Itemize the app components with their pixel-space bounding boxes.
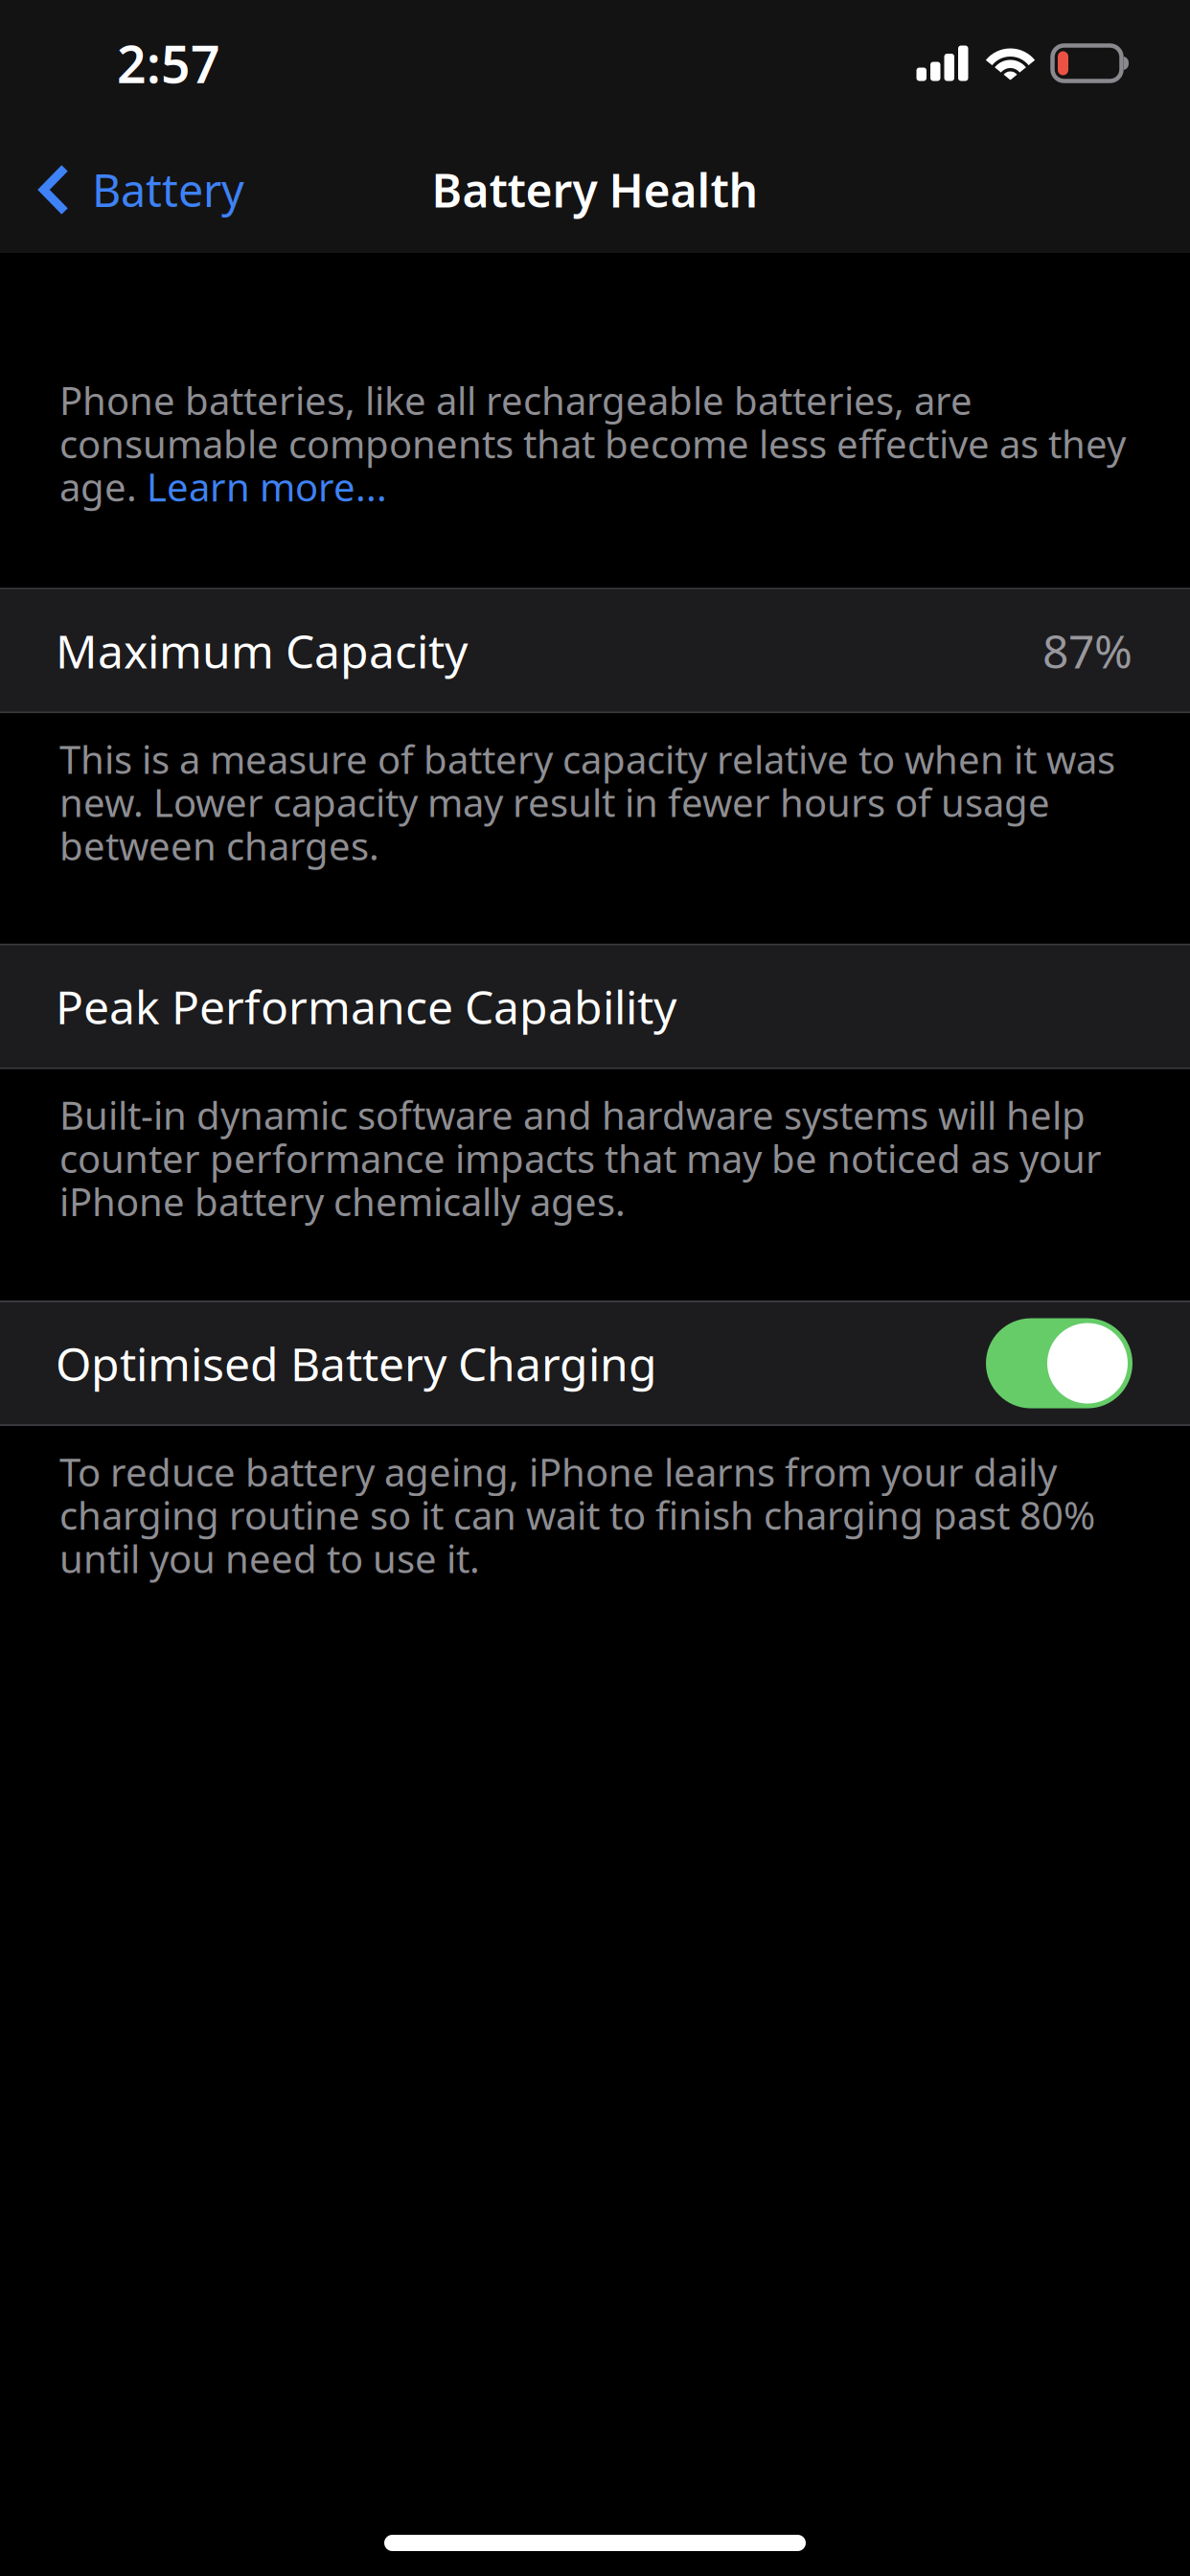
staticText: 2:57 [117,29,220,97]
staticText: This is a measure of battery capacity re… [59,734,1115,871]
staticText: 87% [1042,620,1133,681]
staticText: Peak Performance Capability [56,976,676,1037]
button[interactable]: Optimised Battery Charging [986,1318,1133,1408]
staticText: Battery Health [432,159,758,220]
staticText: Phone batteries, like all rechargeable b… [59,375,1126,512]
staticText: Battery [92,160,244,219]
staticText: Optimised Battery Charging [56,1333,657,1394]
staticText: Built-in dynamic software and hardware s… [59,1089,1102,1227]
staticText: Maximum Capacity [56,620,468,681]
button[interactable]: Battery [0,126,345,253]
staticText: To reduce battery ageing, iPhone learns … [59,1446,1095,1584]
button[interactable]: Peak Performance Capability [0,944,1190,1069]
